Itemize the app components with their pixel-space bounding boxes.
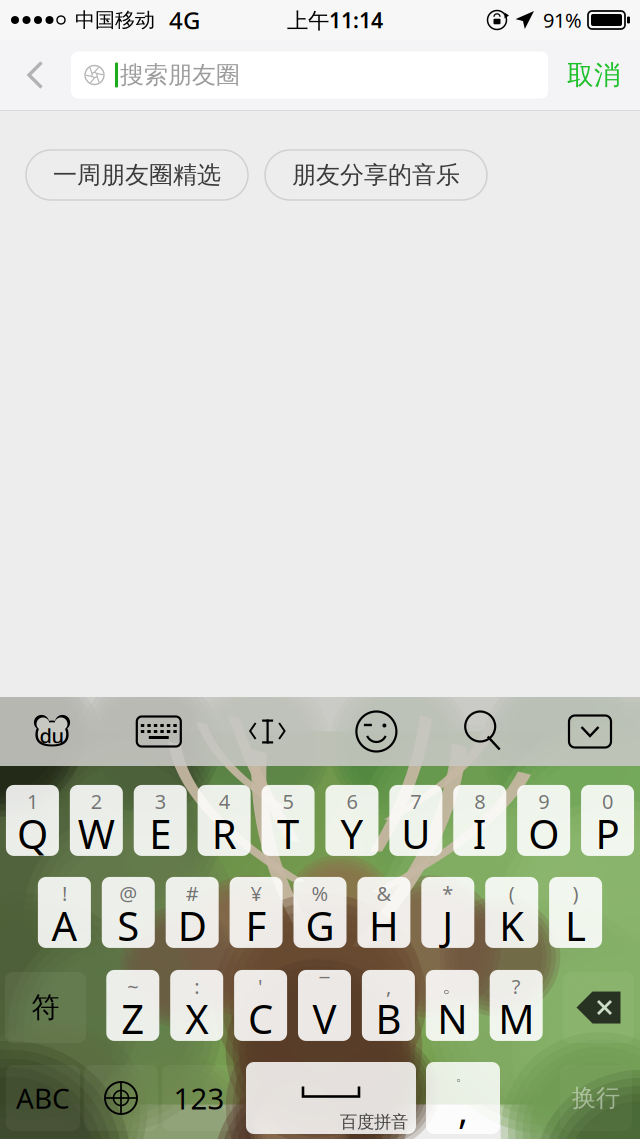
- button[interactable]: Switch language: [84, 1065, 158, 1131]
- staticText: 换行: [572, 1083, 620, 1113]
- staticText: 0: [602, 788, 613, 814]
- staticText: P: [595, 807, 619, 860]
- button[interactable]: ?: [490, 972, 543, 1043]
- button[interactable]: 8: [453, 787, 506, 858]
- staticText: M: [498, 992, 534, 1045]
- staticText: V: [312, 992, 336, 1045]
- staticText: Q: [17, 807, 48, 860]
- staticText: 91%: [543, 7, 582, 33]
- staticText: 4G: [169, 4, 200, 36]
- button[interactable]: ': [234, 972, 287, 1043]
- staticText: *: [442, 880, 453, 906]
- button[interactable]: ): [549, 879, 602, 950]
- button[interactable]: 3: [134, 787, 187, 858]
- button[interactable]: Baidu IME: [26, 708, 78, 754]
- staticText: 1: [27, 788, 38, 814]
- staticText: 8: [474, 788, 485, 814]
- button[interactable]: :: [170, 972, 223, 1043]
- button[interactable]: (: [485, 879, 538, 950]
- button[interactable]: 符: [5, 972, 86, 1043]
- staticText: 9: [538, 788, 549, 814]
- staticText: #: [186, 880, 199, 906]
- staticText: X: [185, 992, 208, 1045]
- button[interactable]: %: [293, 879, 346, 950]
- staticText: R: [212, 807, 237, 860]
- staticText: T: [277, 807, 299, 860]
- button[interactable]: 。: [426, 1062, 500, 1134]
- staticText: :: [194, 973, 199, 999]
- button[interactable]: 6: [325, 787, 378, 858]
- button[interactable]: Delete: [563, 972, 634, 1043]
- button[interactable]: Hide keyboard: [564, 711, 616, 751]
- button[interactable]: 。: [426, 972, 479, 1043]
- staticText: 5: [282, 788, 293, 814]
- staticText: !: [62, 880, 67, 906]
- staticText: 6: [346, 788, 357, 814]
- staticText: 4: [219, 788, 230, 814]
- staticText: ¥: [251, 880, 262, 906]
- staticText: &: [376, 880, 391, 906]
- staticText: S: [117, 899, 139, 952]
- button[interactable]: 0: [581, 787, 634, 858]
- staticText: H: [369, 899, 399, 952]
- button[interactable]: ~: [106, 972, 159, 1043]
- staticText: Y: [340, 807, 363, 860]
- staticText: L: [565, 899, 586, 952]
- staticText: 7: [410, 788, 421, 814]
- button[interactable]: &: [357, 879, 410, 950]
- button[interactable]: 取消: [548, 40, 640, 110]
- button[interactable]: Space: [246, 1062, 416, 1134]
- staticText: B: [375, 992, 401, 1045]
- button[interactable]: Switch keyboard: [133, 711, 185, 751]
- button[interactable]: ABC: [6, 1065, 80, 1131]
- staticText: ): [573, 880, 579, 906]
- button[interactable]: !: [38, 879, 91, 950]
- staticText: A: [51, 899, 77, 952]
- button[interactable]: 123: [162, 1065, 236, 1131]
- button[interactable]: 2: [70, 787, 123, 858]
- button[interactable]: *: [421, 879, 474, 950]
- staticText: O: [528, 807, 559, 860]
- staticText: ~: [127, 973, 138, 999]
- staticText: ,: [386, 973, 391, 999]
- staticText: 搜索朋友圈: [120, 60, 240, 90]
- button[interactable]: Emoji: [350, 709, 402, 753]
- button[interactable]: Move cursor: [240, 711, 296, 751]
- staticText: F: [246, 899, 267, 952]
- staticText: ABC: [16, 1079, 70, 1117]
- button[interactable]: 搜索朋友圈: [71, 51, 548, 98]
- button[interactable]: @: [102, 879, 155, 950]
- button[interactable]: 朋友分享的音乐: [265, 150, 487, 200]
- button[interactable]: ,: [362, 972, 415, 1043]
- staticText: 百度拼音: [340, 1111, 408, 1133]
- staticText: W: [78, 807, 115, 860]
- staticText: 。: [442, 973, 462, 997]
- button[interactable]: Return: [560, 1065, 632, 1131]
- staticText: 取消: [567, 59, 621, 91]
- button[interactable]: 一周朋友圈精选: [26, 150, 248, 200]
- staticText: U: [401, 807, 430, 860]
- button[interactable]: #: [166, 879, 219, 950]
- staticText: G: [305, 899, 334, 952]
- button[interactable]: ‾: [298, 972, 351, 1043]
- button[interactable]: Search: [457, 709, 509, 753]
- button[interactable]: 9: [517, 787, 570, 858]
- staticText: ,: [458, 1085, 468, 1134]
- staticText: 符: [31, 990, 59, 1025]
- staticText: I: [473, 807, 487, 860]
- staticText: N: [437, 992, 467, 1045]
- button[interactable]: 7: [389, 787, 442, 858]
- staticText: J: [442, 899, 453, 952]
- staticText: Z: [121, 992, 144, 1045]
- staticText: ?: [512, 973, 521, 999]
- staticText: ‾: [319, 973, 329, 999]
- button[interactable]: Back: [0, 40, 71, 110]
- staticText: ': [258, 973, 263, 999]
- staticText: 3: [155, 788, 166, 814]
- button[interactable]: 4: [198, 787, 251, 858]
- staticText: 中国移动: [75, 8, 155, 32]
- button[interactable]: 5: [261, 787, 314, 858]
- button[interactable]: ¥: [230, 879, 283, 950]
- button[interactable]: 1: [6, 787, 59, 858]
- staticText: 。: [455, 1067, 470, 1085]
